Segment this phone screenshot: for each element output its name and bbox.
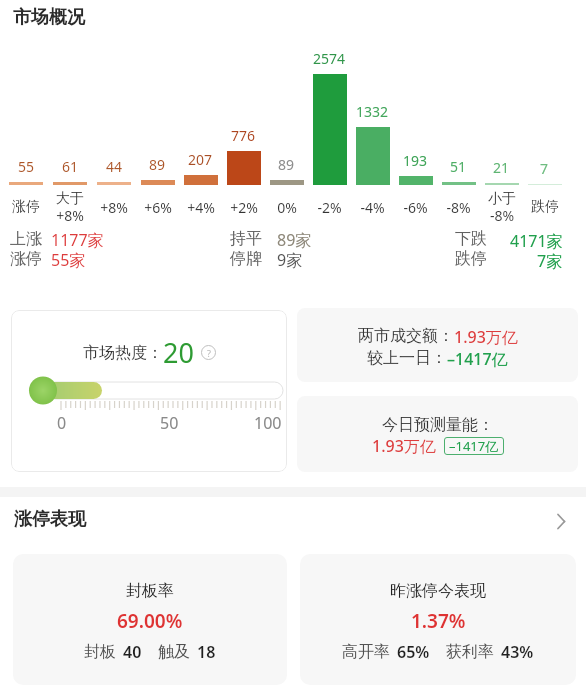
- staticText: +6%: [144, 198, 172, 217]
- staticText: 1.93万亿: [372, 435, 436, 457]
- button[interactable]: 两市成交额：: [297, 308, 578, 382]
- staticText: 89家: [277, 229, 312, 251]
- staticText: 较上一日：: [367, 348, 447, 368]
- staticText: 18: [197, 641, 216, 663]
- staticText: +8%: [100, 198, 128, 217]
- staticText: 89: [149, 155, 166, 174]
- staticText: 0%: [277, 198, 297, 217]
- staticText: 涨停: [12, 198, 40, 216]
- staticText: 100: [254, 412, 282, 434]
- staticText: +2%: [230, 198, 258, 217]
- staticText: 0: [57, 412, 67, 434]
- staticText: 40: [123, 641, 142, 663]
- staticText: 43%: [501, 641, 534, 663]
- button[interactable]: 昨涨停今表现: [300, 554, 576, 685]
- staticText: 89: [278, 155, 295, 174]
- button[interactable]: 封板率: [13, 554, 287, 685]
- staticText: 61: [62, 157, 79, 176]
- staticText: 小于 -8%: [488, 190, 516, 225]
- staticText: –1417亿: [447, 348, 508, 370]
- staticText: 44: [106, 157, 123, 176]
- staticText: –1417亿: [449, 437, 499, 455]
- staticText: -6%: [403, 198, 428, 217]
- staticText: 获利率: [446, 642, 494, 662]
- staticText: 高开率: [342, 642, 390, 662]
- staticText: 跌停: [455, 249, 487, 269]
- staticText: 持平: [230, 229, 262, 249]
- staticText: 跌停: [531, 198, 559, 216]
- staticText: 7: [540, 159, 549, 178]
- staticText: 193: [403, 151, 428, 170]
- staticText: 55: [18, 157, 35, 176]
- staticText: 封板: [84, 642, 116, 662]
- staticText: 65%: [397, 641, 430, 663]
- staticText: 1.93万亿: [454, 326, 518, 348]
- staticText: 50: [160, 412, 179, 434]
- staticText: 69.00%: [117, 608, 183, 634]
- staticText: 今日预测量能：: [382, 415, 494, 435]
- staticText: +4%: [187, 198, 215, 217]
- staticText: 9家: [277, 249, 303, 271]
- staticText: 776: [231, 126, 256, 145]
- staticText: 207: [188, 150, 213, 169]
- staticText: 1332: [356, 102, 389, 121]
- staticText: 51: [450, 157, 467, 176]
- staticText: 封板率: [126, 581, 174, 601]
- button[interactable]: [557, 514, 566, 529]
- staticText: 昨涨停今表现: [390, 581, 486, 601]
- staticText: 市场热度：: [83, 343, 163, 363]
- button[interactable]: 市场热度：: [11, 310, 287, 472]
- staticText: 大于 +8%: [56, 190, 84, 225]
- staticText: 下跌: [455, 229, 487, 249]
- staticText: 21: [493, 158, 510, 177]
- staticText: 停牌: [230, 249, 262, 269]
- staticText: 涨停表现: [14, 508, 86, 531]
- staticText: 1177家: [51, 229, 104, 251]
- staticText: -4%: [360, 198, 385, 217]
- staticText: ?: [207, 347, 211, 359]
- staticText: 20: [163, 334, 194, 371]
- staticText: 7家: [537, 250, 563, 272]
- staticText: 2574: [313, 49, 346, 68]
- staticText: 市场概况: [13, 6, 85, 29]
- staticText: 1.37%: [411, 608, 466, 634]
- staticText: 涨停: [10, 249, 42, 269]
- staticText: -8%: [446, 198, 471, 217]
- staticText: 触及: [158, 642, 190, 662]
- staticText: -2%: [317, 198, 342, 217]
- staticText: 55家: [51, 249, 86, 271]
- staticText: 两市成交额：: [358, 326, 454, 346]
- staticText: 上涨: [10, 229, 42, 249]
- button[interactable]: 今日预测量能：: [297, 396, 578, 472]
- staticText: 4171家: [510, 230, 563, 252]
